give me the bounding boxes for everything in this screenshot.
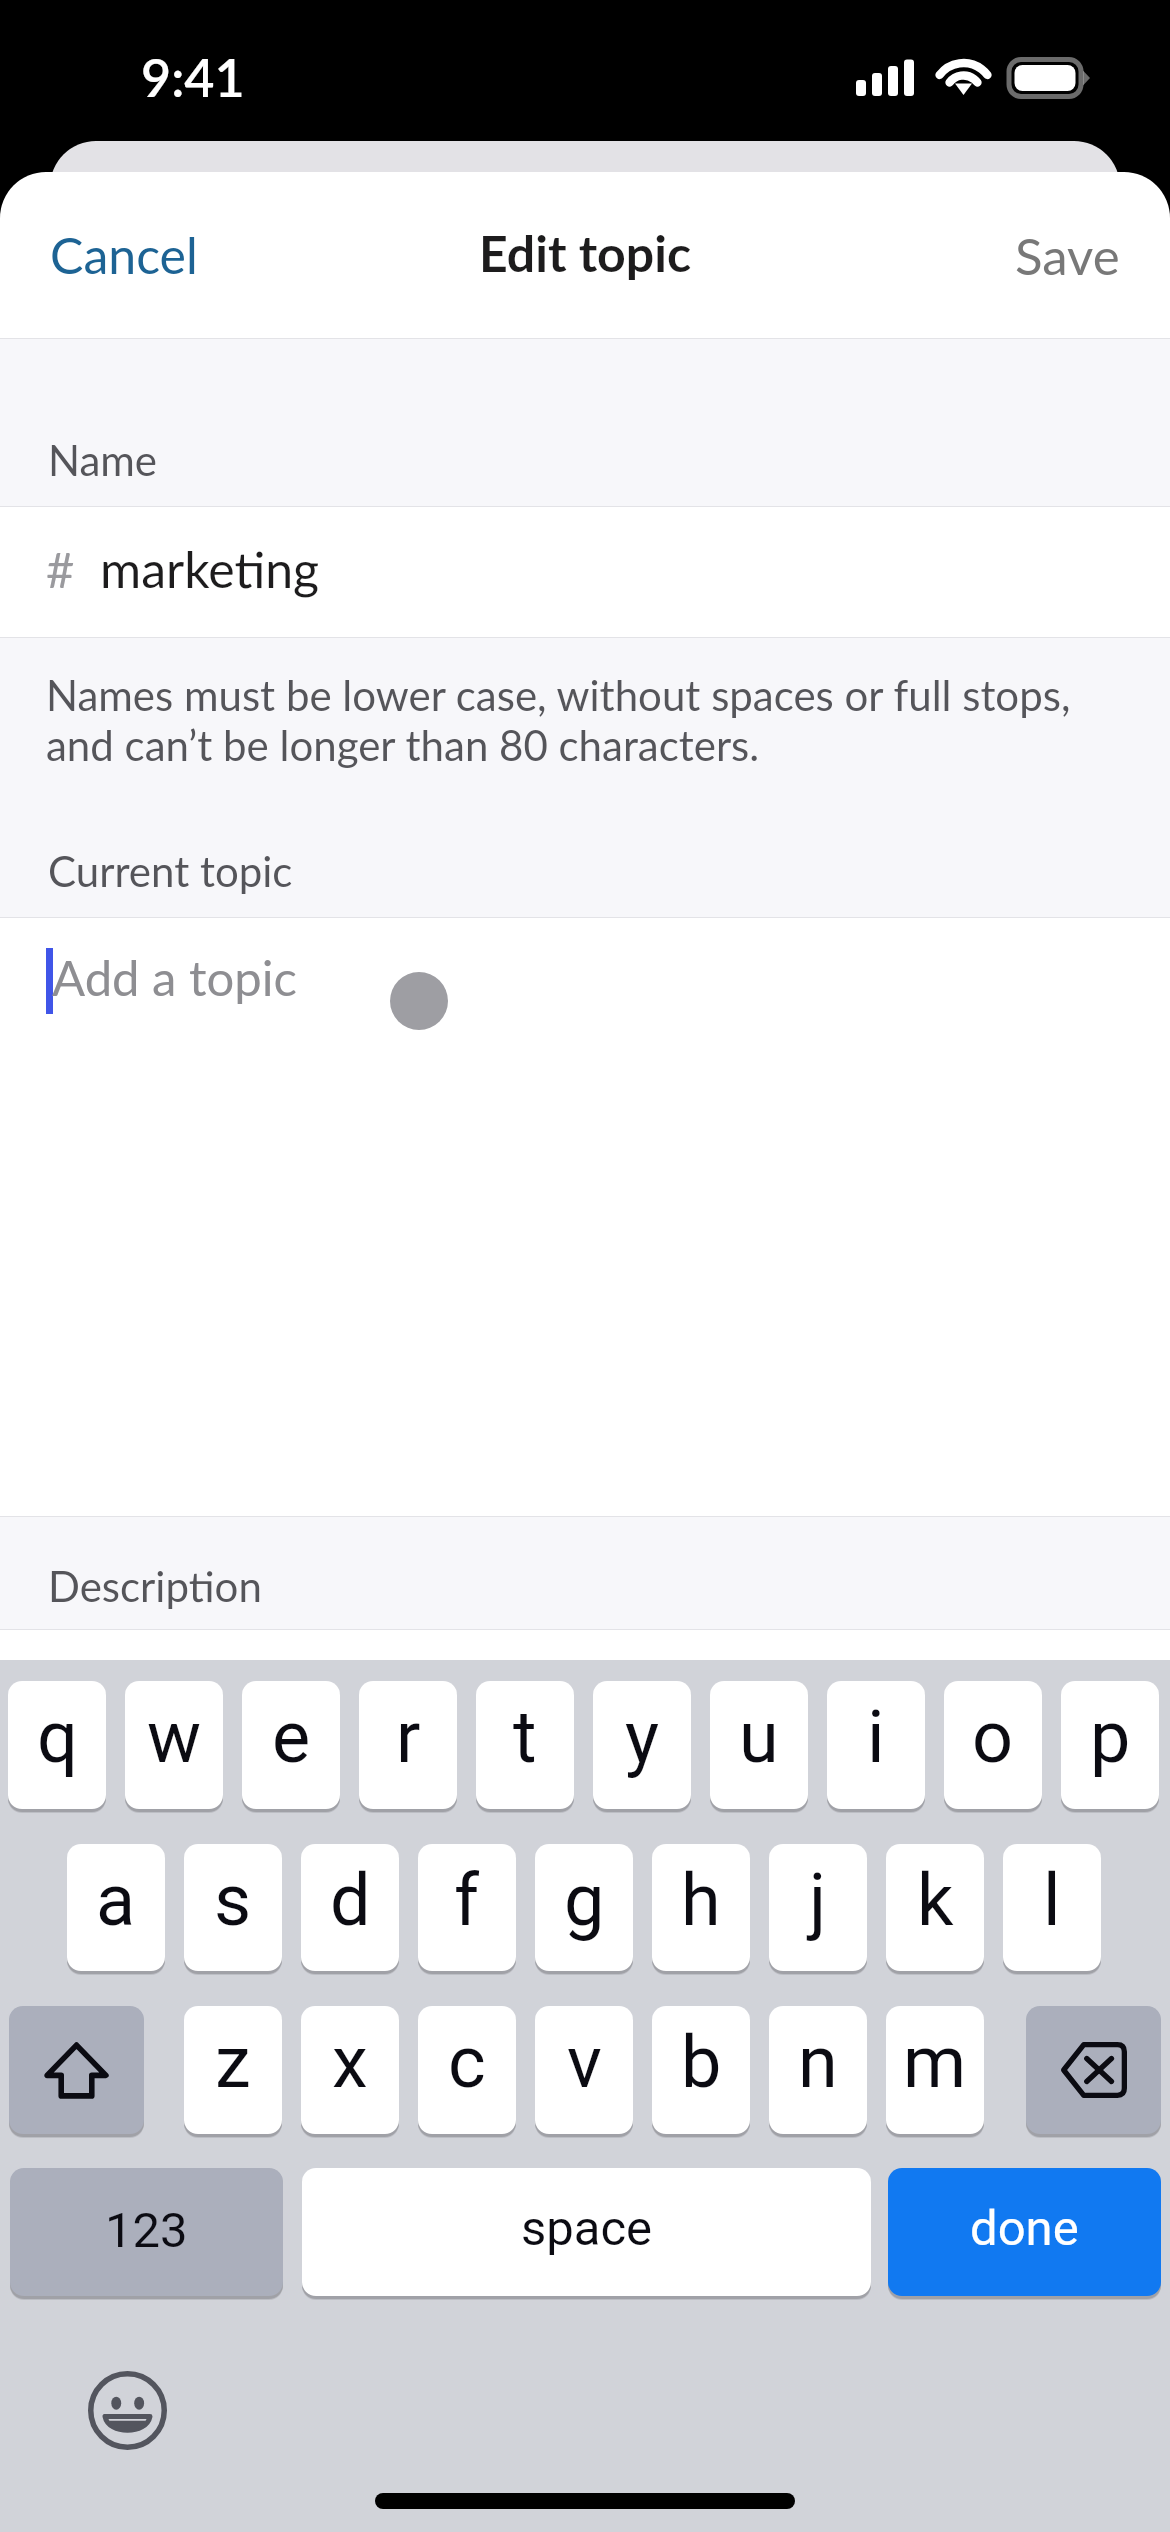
staticText: # — [46, 540, 75, 599]
button[interactable]: o — [944, 1681, 1042, 1809]
button[interactable]: f — [418, 1844, 516, 1971]
staticText: p — [1090, 1695, 1131, 1779]
staticText: Edit topic — [479, 223, 692, 283]
button[interactable]: j — [769, 1844, 867, 1971]
staticText: marketing — [100, 539, 320, 599]
button[interactable]: t — [476, 1681, 574, 1809]
staticText: b — [681, 2020, 722, 2104]
staticText: w — [147, 1695, 202, 1779]
button[interactable]: s — [184, 1844, 282, 1971]
button[interactable]: l — [1003, 1844, 1101, 1971]
staticText: Current topic — [48, 846, 293, 896]
button[interactable]: a — [67, 1844, 165, 1971]
staticText: z — [215, 2020, 251, 2104]
staticText: u — [739, 1695, 779, 1779]
staticText: m — [903, 2020, 967, 2104]
button[interactable]: v — [535, 2006, 633, 2134]
button[interactable]: 123 — [10, 2168, 283, 2296]
staticText: Add a topic — [52, 948, 297, 1007]
button[interactable]: done — [888, 2168, 1161, 2296]
staticText: t — [513, 1695, 537, 1779]
staticText: j — [809, 1858, 827, 1942]
staticText: Name — [48, 435, 158, 485]
button[interactable]: Save — [975, 195, 1170, 316]
staticText: y — [625, 1695, 660, 1779]
staticText: a — [96, 1858, 136, 1942]
staticText: c — [448, 2020, 486, 2104]
staticText: Description — [48, 1561, 262, 1611]
button[interactable]: b — [652, 2006, 750, 2134]
button[interactable]: k — [886, 1844, 984, 1971]
button[interactable]: g — [535, 1844, 633, 1971]
staticText: 123 — [105, 2202, 188, 2259]
button[interactable]: r — [359, 1681, 457, 1809]
staticText: Save — [1015, 225, 1120, 286]
staticText: Cancel — [50, 225, 198, 285]
staticText: k — [917, 1858, 954, 1942]
staticText: d — [330, 1858, 371, 1942]
button[interactable]: Shift — [9, 2006, 144, 2134]
button[interactable]: d — [301, 1844, 399, 1971]
staticText: f — [454, 1858, 480, 1942]
staticText: l — [1043, 1858, 1061, 1942]
staticText: i — [867, 1695, 885, 1779]
button[interactable]: u — [710, 1681, 808, 1809]
button[interactable]: Emoji — [88, 2371, 167, 2450]
staticText: space — [521, 2200, 653, 2257]
staticText: 9:41 — [141, 46, 245, 108]
staticText: v — [567, 2020, 602, 2104]
staticText: done — [970, 2200, 1079, 2257]
button[interactable]: Add a topic — [0, 918, 1170, 1516]
staticText: s — [214, 1858, 252, 1942]
staticText: Names must be lower case, without spaces… — [46, 670, 1071, 770]
button[interactable]: i — [827, 1681, 925, 1809]
button[interactable]: c — [418, 2006, 516, 2134]
staticText: e — [272, 1695, 311, 1779]
staticText: q — [37, 1695, 78, 1779]
button[interactable]: Delete — [1026, 2006, 1161, 2134]
staticText: x — [332, 2020, 368, 2104]
staticText: g — [564, 1858, 605, 1942]
button[interactable]: z — [184, 2006, 282, 2134]
button[interactable]: q — [8, 1681, 106, 1809]
button[interactable]: e — [242, 1681, 340, 1809]
button[interactable]: w — [125, 1681, 223, 1809]
button[interactable]: m — [886, 2006, 984, 2134]
button[interactable]: space — [302, 2168, 871, 2296]
staticText: n — [798, 2020, 838, 2104]
staticText: r — [396, 1695, 421, 1779]
button[interactable]: h — [652, 1844, 750, 1971]
button[interactable]: p — [1061, 1681, 1159, 1809]
button[interactable]: # — [0, 507, 1170, 637]
button[interactable]: Cancel — [0, 195, 238, 315]
staticText: h — [681, 1858, 721, 1942]
button[interactable]: x — [301, 2006, 399, 2134]
button[interactable]: y — [593, 1681, 691, 1809]
staticText: o — [972, 1695, 1014, 1779]
button[interactable]: n — [769, 2006, 867, 2134]
